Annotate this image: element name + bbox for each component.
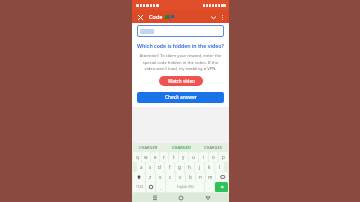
staticText: . [209, 185, 211, 190]
button[interactable]: p [219, 152, 228, 162]
button[interactable] [216, 172, 228, 182]
staticText: k [208, 164, 211, 170]
button[interactable]: c [166, 172, 175, 182]
staticText: p [222, 154, 225, 160]
staticText: s [149, 164, 152, 170]
button[interactable]: Watch video [159, 76, 203, 86]
button[interactable]: x [156, 172, 165, 182]
button[interactable]: . [205, 182, 214, 192]
button[interactable]: f [165, 162, 174, 172]
staticText: c [169, 174, 172, 180]
staticText: z [149, 174, 152, 180]
button[interactable]: CHARGED [165, 143, 197, 152]
staticText: v [179, 174, 182, 180]
button[interactable]: CHARGER [132, 143, 165, 152]
button[interactable]: h [185, 162, 194, 172]
staticText: l [219, 164, 221, 170]
staticText: CHARGER [139, 145, 158, 150]
staticText: m [208, 174, 213, 180]
button[interactable]: Expand [208, 12, 218, 22]
staticText: ?123 [136, 185, 143, 189]
staticText: Watch video [168, 78, 195, 84]
staticText: u [192, 154, 195, 160]
staticText: g [178, 164, 181, 170]
staticText: i [203, 154, 205, 160]
staticText: e [154, 154, 157, 160]
button[interactable]: Home [176, 193, 185, 202]
staticText: f [169, 164, 171, 170]
button[interactable]: e [151, 152, 159, 162]
button[interactable]: k [205, 162, 214, 172]
button[interactable]: b [186, 172, 195, 182]
staticText: Code [149, 13, 163, 20]
button[interactable]: n [196, 172, 205, 182]
staticText: a [140, 164, 143, 170]
staticText: n [199, 174, 202, 180]
button[interactable]: q [133, 152, 141, 162]
button[interactable]: More options [218, 13, 226, 21]
button[interactable]: s [146, 162, 154, 172]
staticText: x [159, 174, 162, 180]
button[interactable] [146, 182, 155, 192]
button[interactable]: Back [203, 193, 212, 202]
staticText: Which code is hidden in the video? [137, 42, 224, 49]
button[interactable]: ?123 [133, 182, 145, 192]
button[interactable]: Close [135, 12, 145, 22]
staticText: w [144, 154, 148, 160]
button[interactable]: w [142, 152, 150, 162]
staticText: h [188, 164, 191, 170]
staticText: CHARGED [172, 145, 191, 150]
staticText: b [189, 174, 192, 180]
button[interactable]: i [199, 152, 208, 162]
staticText: Attention! To claim your reward, enter t… [137, 53, 224, 71]
button[interactable]: m [206, 172, 215, 182]
button[interactable]: l [215, 162, 224, 172]
button[interactable]: a [137, 162, 145, 172]
button[interactable]: , [156, 182, 165, 192]
staticText: Check answer [165, 94, 197, 101]
staticText: j [199, 164, 201, 170]
button[interactable]: Check answer [137, 92, 224, 103]
staticText: r [163, 154, 165, 160]
button[interactable]: Enter [215, 182, 228, 192]
button[interactable]: o [209, 152, 218, 162]
button[interactable] [137, 25, 224, 37]
staticText: y [182, 154, 185, 160]
button[interactable]: d [155, 162, 164, 172]
staticText: CHARGES [204, 145, 222, 150]
staticText: o [212, 154, 215, 160]
button[interactable]: y [179, 152, 188, 162]
button[interactable]: g [175, 162, 184, 172]
button[interactable]: t [169, 152, 178, 162]
button[interactable]: Recents [150, 193, 159, 202]
button[interactable]: r [160, 152, 168, 162]
button[interactable]: z [146, 172, 155, 182]
button[interactable]: v [176, 172, 185, 182]
button[interactable]: Space [166, 182, 204, 192]
button[interactable] [133, 172, 145, 182]
staticText: d [158, 164, 161, 170]
button[interactable]: j [195, 162, 204, 172]
staticText: English (US) [177, 185, 194, 189]
staticText: , [160, 185, 162, 190]
staticText: q [136, 154, 139, 160]
button[interactable]: CHARGES [197, 143, 229, 152]
staticText: t [173, 154, 175, 160]
button[interactable]: u [189, 152, 198, 162]
